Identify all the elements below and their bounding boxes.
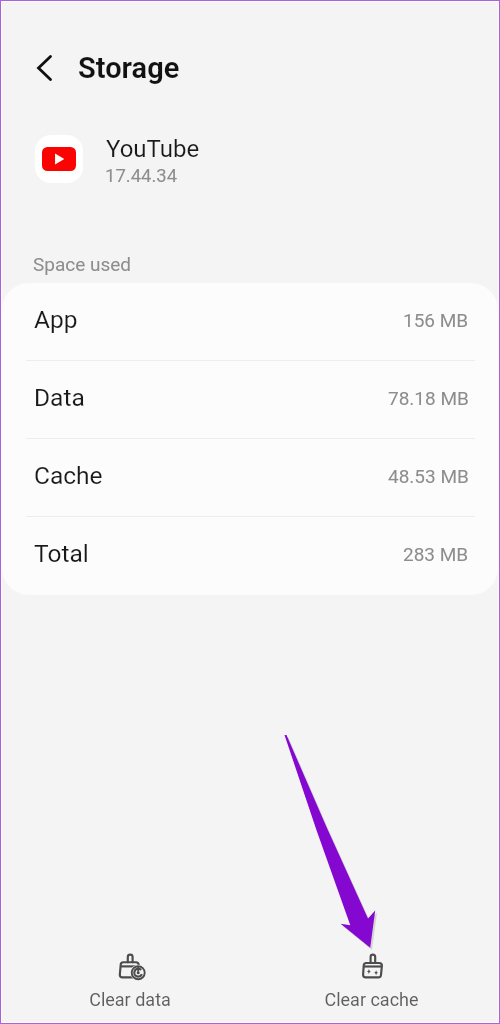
staticText: 283 MB [403, 543, 469, 565]
button[interactable]: Clear data [55, 951, 205, 1010]
button[interactable]: Cache [2, 439, 498, 517]
staticText: YouTube [106, 135, 200, 163]
staticText: 78.18 MB [388, 387, 469, 409]
staticText: 48.53 MB [388, 465, 469, 487]
button[interactable]: App [2, 283, 498, 361]
staticText: Data [34, 383, 85, 412]
staticText: Storage [78, 51, 180, 85]
staticText: 17.44.34 [105, 165, 178, 187]
staticText: Space used [33, 253, 132, 275]
staticText: 156 MB [403, 309, 469, 331]
button[interactable]: Back [23, 46, 67, 90]
staticText: Clear data [89, 989, 171, 1010]
button[interactable]: Total [2, 517, 498, 595]
staticText: App [34, 305, 78, 334]
staticText: Clear cache [324, 989, 419, 1010]
staticText: Cache [34, 461, 103, 490]
button[interactable]: Data [2, 361, 498, 439]
button[interactable]: Clear cache [296, 951, 446, 1010]
staticText: Total [34, 539, 89, 568]
